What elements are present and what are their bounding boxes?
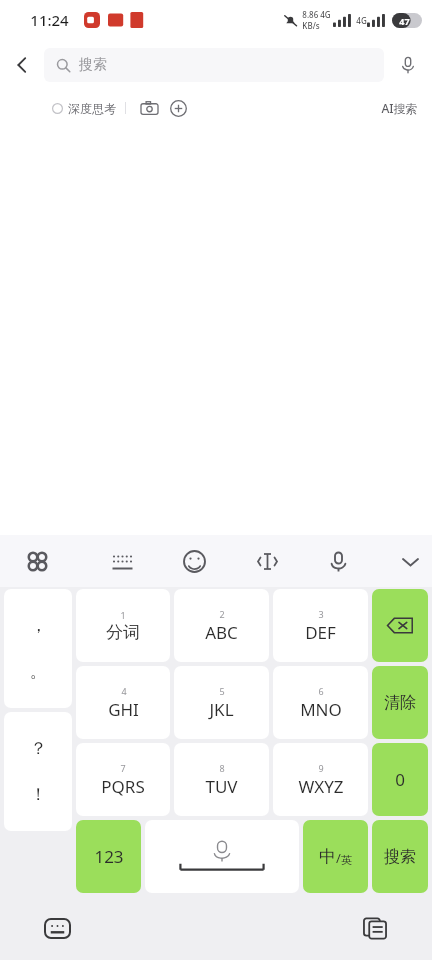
button[interactable]: 8 [174, 743, 269, 816]
staticText: ？ [30, 738, 47, 759]
staticText: WXYZ [298, 775, 344, 798]
staticText: 分词 [106, 622, 140, 643]
staticText: PQRS [101, 775, 145, 798]
staticText: 6 [318, 685, 324, 697]
staticText: 0 [395, 768, 405, 791]
button[interactable]: 0 [372, 743, 428, 816]
staticText: 11:24 [30, 10, 69, 30]
button[interactable]: ， [4, 589, 72, 708]
staticText: GHI [108, 698, 139, 721]
button[interactable]: Switch keyboard [35, 906, 79, 950]
staticText: 搜索 [79, 56, 107, 74]
staticText: TUV [205, 775, 238, 798]
staticText: / [336, 849, 341, 867]
button[interactable]: 清除 [372, 666, 428, 739]
staticText: JKL [209, 698, 234, 721]
staticText: 2 [219, 608, 225, 620]
button[interactable]: Apps [15, 539, 59, 583]
button[interactable]: Camera search [137, 96, 161, 120]
staticText: 8.86 4G [302, 9, 331, 20]
button[interactable]: 搜索 [44, 48, 384, 82]
staticText: KB/s [302, 20, 320, 31]
button[interactable]: Backspace [372, 589, 428, 662]
staticText: 。 [30, 661, 47, 682]
staticText: 123 [94, 845, 124, 868]
button[interactable]: 2 [174, 589, 269, 662]
button[interactable]: 搜索 [372, 820, 428, 893]
staticText: DEF [305, 621, 336, 644]
button[interactable]: 6 [273, 666, 368, 739]
button[interactable]: 中 [303, 820, 368, 893]
staticText: 9 [318, 762, 324, 774]
staticText: 清除 [384, 693, 416, 713]
button[interactable]: 9 [273, 743, 368, 816]
staticText: 7 [120, 762, 126, 774]
staticText: ， [30, 615, 47, 636]
button[interactable]: 3 [273, 589, 368, 662]
button[interactable]: 1 [76, 589, 170, 662]
staticText: 搜索 [384, 847, 416, 867]
button[interactable]: Back [0, 43, 44, 87]
button[interactable]: Voice search [384, 41, 432, 89]
staticText: 4 [121, 685, 127, 697]
staticText: 47 [399, 15, 410, 27]
button[interactable]: 7 [76, 743, 170, 816]
staticText: AI搜索 [381, 100, 418, 116]
staticText: ！ [30, 784, 47, 805]
staticText: 3 [318, 608, 324, 620]
button[interactable]: ？ [4, 712, 72, 831]
staticText: 5 [219, 685, 225, 697]
button[interactable]: 深度思考 [52, 101, 116, 116]
button[interactable]: 4 [76, 666, 170, 739]
staticText: 英 [341, 853, 352, 867]
staticText: 中 [319, 846, 336, 867]
button[interactable]: Add [166, 96, 190, 120]
staticText: 深度思考 [68, 101, 116, 116]
staticText: 1 [120, 609, 126, 621]
staticText: MNO [300, 698, 342, 721]
button[interactable]: Keyboard layout [100, 539, 144, 583]
button[interactable]: Hide keyboard [388, 539, 432, 583]
button[interactable]: Emoji [172, 539, 216, 583]
button[interactable]: Clipboard [353, 906, 397, 950]
staticText: ABC [205, 621, 238, 644]
button[interactable]: Edit text [245, 539, 289, 583]
staticText: 4G [356, 15, 367, 26]
button[interactable]: AI搜索 [381, 100, 418, 116]
staticText: 8 [219, 762, 225, 774]
button[interactable]: Voice input [316, 539, 360, 583]
button[interactable]: 123 [76, 820, 141, 893]
button[interactable]: Space [145, 820, 299, 893]
button[interactable]: 5 [174, 666, 269, 739]
